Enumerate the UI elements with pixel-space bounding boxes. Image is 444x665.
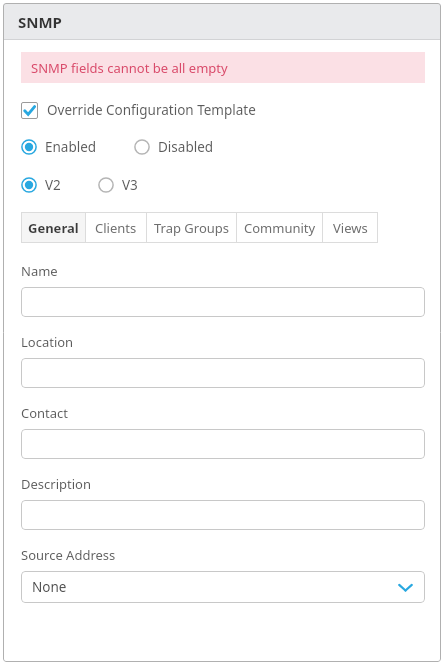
staticText: General: [28, 219, 79, 237]
staticText: Clients: [95, 219, 137, 237]
staticText: None: [32, 578, 67, 596]
staticText: Enabled: [45, 138, 97, 156]
button[interactable]: V2: [21, 174, 61, 196]
staticText: SNMP: [18, 12, 62, 32]
button[interactable]: Disabled: [134, 136, 214, 158]
other: Override Configuration Template: [21, 102, 38, 119]
button[interactable]: None: [21, 571, 425, 603]
button[interactable]: [21, 358, 425, 388]
button[interactable]: [21, 500, 425, 530]
button[interactable]: V3: [98, 174, 138, 196]
staticText: Disabled: [158, 138, 214, 156]
staticText: Description: [21, 475, 91, 493]
button[interactable]: Clients: [86, 212, 146, 243]
button[interactable]: [21, 429, 425, 459]
staticText: SNMP fields cannot be all empty: [31, 59, 228, 77]
staticText: Trap Groups: [154, 219, 230, 237]
staticText: Override Configuration Template: [47, 101, 256, 119]
button[interactable]: Views: [323, 212, 378, 243]
button[interactable]: [21, 287, 425, 317]
other: Open dropdown: [398, 580, 413, 595]
staticText: Location: [21, 333, 74, 351]
button[interactable]: Enabled: [21, 136, 97, 158]
staticText: V3: [122, 176, 138, 194]
staticText: Contact: [21, 404, 69, 422]
button[interactable]: Trap Groups: [147, 212, 236, 243]
staticText: Source Address: [21, 546, 116, 564]
staticText: Community: [244, 219, 316, 237]
button[interactable]: Override Configuration Template: [21, 99, 256, 121]
staticText: Views: [333, 219, 368, 237]
staticText: Name: [21, 262, 58, 280]
button[interactable]: Community: [237, 212, 322, 243]
staticText: V2: [45, 176, 61, 194]
button[interactable]: General: [21, 212, 85, 243]
